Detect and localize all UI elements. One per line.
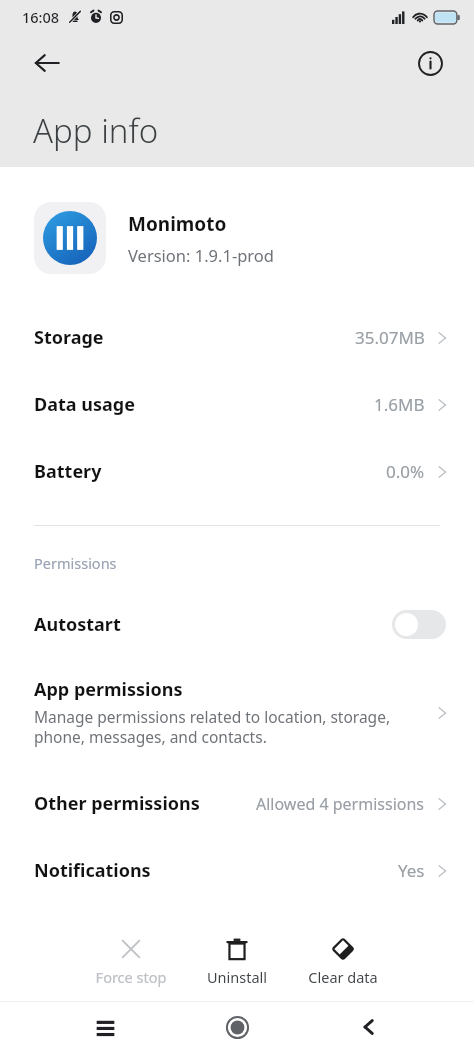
button[interactable]: Storage (0, 304, 474, 371)
button[interactable]: App permissions (0, 669, 474, 756)
staticText: 0.0% (386, 460, 425, 483)
staticText: Force stop (85, 967, 177, 987)
button[interactable]: Clear data (297, 932, 389, 991)
button[interactable]: Info (408, 41, 452, 85)
staticText: Other permissions (34, 791, 200, 816)
staticText: Yes (398, 859, 425, 882)
staticText: Data usage (34, 392, 135, 417)
staticText: Allowed 4 permissions (256, 793, 425, 815)
button[interactable]: Autostart toggle, off (392, 610, 446, 639)
button[interactable]: Data usage (0, 371, 474, 438)
staticText: 35.07MB (355, 326, 425, 349)
staticText: Version: 1.9.1-prod (128, 244, 274, 266)
button[interactable]: Other permissions (0, 770, 474, 837)
button[interactable]: Back (22, 38, 72, 88)
button[interactable]: Back (342, 1001, 396, 1053)
button[interactable]: Monimoto (0, 198, 474, 278)
staticText: Clear data (297, 967, 389, 987)
staticText: App info (33, 108, 159, 153)
staticText: 1.6MB (374, 393, 425, 416)
staticText: Battery (34, 459, 102, 484)
button[interactable]: Uninstall (191, 932, 283, 991)
staticText: 16:08 (22, 7, 60, 27)
staticText: Storage (34, 325, 104, 350)
staticText: App permissions (34, 677, 183, 702)
staticText: Monimoto (128, 211, 227, 237)
staticText: Uninstall (191, 967, 283, 987)
staticText: Permissions (34, 553, 117, 573)
staticText: Notifications (34, 858, 151, 883)
button[interactable]: Recents (78, 1001, 132, 1053)
button[interactable]: Autostart (0, 595, 474, 653)
button[interactable]: Battery (0, 438, 474, 505)
button[interactable]: Notifications (0, 837, 474, 904)
staticText: Manage permissions related to location, … (34, 706, 391, 748)
button[interactable]: Home (210, 1001, 264, 1053)
staticText: Autostart (34, 612, 121, 637)
button[interactable]: Force stop (85, 932, 177, 991)
